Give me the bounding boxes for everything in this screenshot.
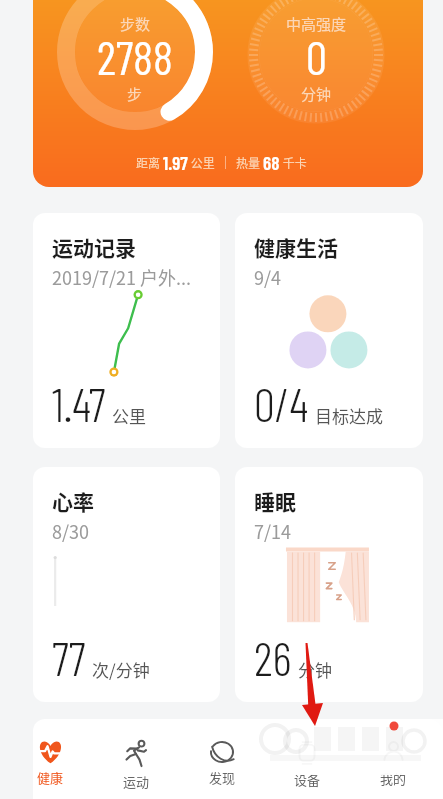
staticText: 1.47: [52, 375, 106, 431]
staticText: 目标达成: [315, 403, 383, 428]
staticText: 设备: [294, 770, 321, 789]
button[interactable]: Profile: [357, 740, 429, 788]
other: Devices: [296, 740, 318, 766]
staticText: 分钟: [298, 657, 332, 682]
staticText: 分钟: [301, 83, 332, 105]
button[interactable]: Devices: [271, 740, 343, 789]
staticText: 2019/7/21 户外...: [52, 264, 192, 290]
staticText: 公里: [188, 154, 215, 171]
button[interactable]: Exercise: [100, 740, 172, 791]
other: Discover: [209, 740, 235, 764]
staticText: 2788: [97, 28, 173, 84]
staticText: 千卡: [280, 154, 307, 171]
staticText: 健康生活: [254, 232, 338, 262]
other: Exercise: [124, 740, 149, 768]
button[interactable]: Discover: [186, 740, 258, 787]
staticText: 77: [52, 629, 86, 685]
staticText: 26: [254, 629, 292, 685]
button[interactable]: 睡眠: [235, 467, 423, 702]
staticText: 1.97: [163, 151, 188, 174]
staticText: 0: [306, 28, 327, 84]
staticText: 我的: [380, 769, 407, 788]
staticText: 次/分钟: [92, 657, 150, 682]
staticText: 发现: [209, 768, 236, 787]
staticText: 距离: [136, 154, 163, 171]
staticText: 睡眠: [254, 486, 296, 516]
button[interactable]: 运动记录: [33, 213, 220, 448]
staticText: 热量: [236, 154, 263, 171]
staticText: 运动记录: [52, 232, 136, 262]
staticText: 8/30: [52, 518, 90, 544]
staticText: 0/4: [254, 375, 309, 431]
staticText: 运动: [123, 772, 150, 791]
staticText: 9/4: [254, 264, 282, 290]
staticText: 中高强度: [286, 13, 347, 35]
staticText: 心率: [52, 486, 94, 516]
staticText: 步数: [120, 13, 151, 35]
button[interactable]: 心率: [33, 467, 220, 702]
other: Health: [37, 740, 64, 764]
staticText: 公里: [112, 403, 146, 428]
staticText: 健康: [37, 768, 64, 787]
button[interactable]: Health: [14, 740, 86, 787]
staticText: 68: [263, 151, 280, 174]
staticText: 7/14: [254, 518, 292, 544]
other: Profile: [381, 740, 406, 765]
button[interactable]: 步数: [33, 0, 423, 187]
staticText: 步: [127, 83, 143, 105]
button[interactable]: 健康生活: [235, 213, 423, 448]
